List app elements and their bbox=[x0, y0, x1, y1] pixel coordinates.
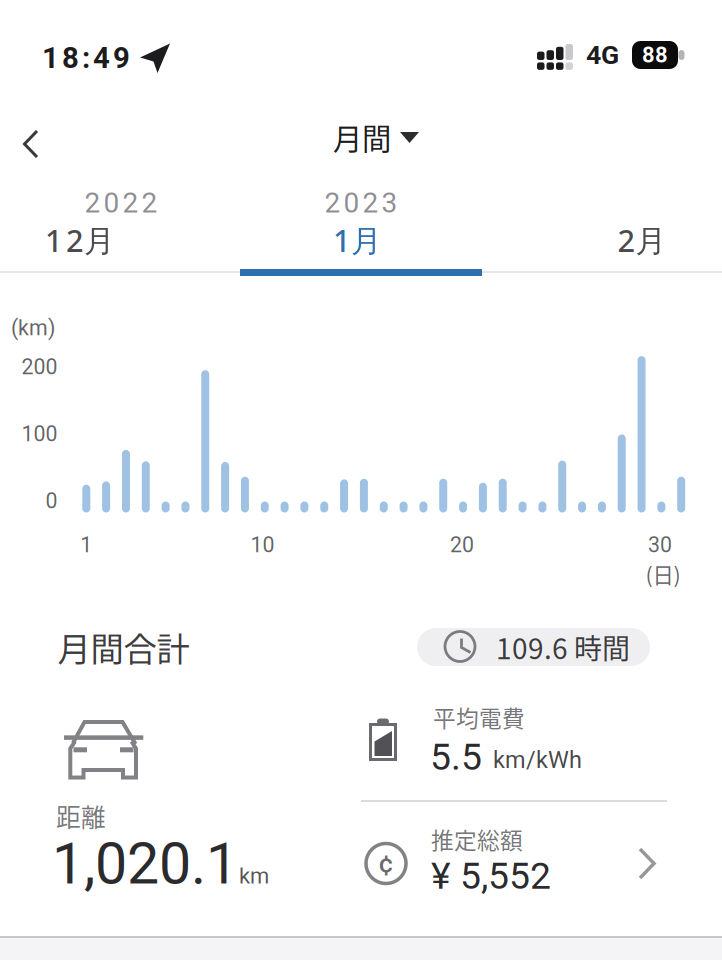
staticText: 1 8 : 4 9 bbox=[42, 41, 130, 75]
staticText: ¥ 5,552 bbox=[431, 854, 551, 898]
staticText: 月間 bbox=[333, 116, 391, 158]
staticText: 4G bbox=[586, 39, 619, 71]
staticText: 0 bbox=[45, 488, 57, 513]
button[interactable]: ¢ bbox=[360, 820, 668, 907]
staticText: km bbox=[239, 863, 269, 889]
staticText: 推定総額 bbox=[431, 823, 523, 855]
staticText: 2 0 2 3 bbox=[324, 187, 397, 219]
staticText: 1月 bbox=[333, 219, 382, 261]
staticText: 距離 bbox=[56, 798, 106, 834]
staticText: 200 bbox=[21, 354, 57, 379]
staticText: 平均電費 bbox=[433, 701, 525, 733]
staticText: 109.6 時間 bbox=[496, 627, 630, 667]
staticText: 月間合計 bbox=[57, 623, 189, 671]
button[interactable]: 月間 bbox=[310, 112, 430, 162]
staticText: 10 bbox=[250, 532, 274, 557]
staticText: 88 bbox=[642, 42, 668, 68]
staticText: km/kWh bbox=[493, 746, 582, 774]
staticText: 1 bbox=[80, 532, 92, 557]
staticText: 30 bbox=[648, 532, 672, 557]
staticText: 2月 bbox=[617, 219, 666, 261]
staticText: ¢ bbox=[378, 848, 393, 879]
staticText: (km) bbox=[11, 315, 55, 340]
staticText: 1 2月 bbox=[45, 219, 115, 261]
staticText: 5.5 bbox=[430, 735, 482, 779]
staticText: 2 0 2 2 bbox=[84, 187, 157, 219]
button[interactable]: 2 0 2 3 bbox=[240, 185, 481, 277]
staticText: 100 bbox=[21, 421, 57, 446]
button[interactable]: 2 0 2 2 bbox=[0, 185, 241, 277]
staticText: 20 bbox=[450, 532, 474, 557]
button[interactable]: Back bbox=[6, 122, 54, 166]
staticText: (日) bbox=[645, 559, 680, 589]
staticText: 1,020.1 bbox=[52, 830, 238, 898]
button[interactable]: 2月 bbox=[481, 185, 721, 277]
